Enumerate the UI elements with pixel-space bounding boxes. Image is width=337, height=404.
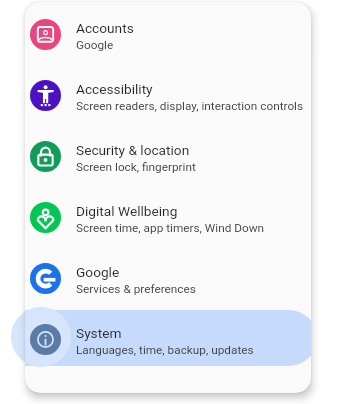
button[interactable]: System	[25, 309, 311, 370]
staticText: Screen lock, fingerprint	[76, 160, 196, 174]
button[interactable]: Google	[25, 248, 311, 309]
button[interactable]: Accounts	[25, 4, 311, 65]
staticText: Digital Wellbeing	[76, 203, 178, 219]
staticText: Languages, time, backup, updates	[76, 343, 254, 357]
staticText: Security & location	[76, 142, 190, 158]
button[interactable]: Security & location	[25, 126, 311, 187]
button[interactable]: Digital Wellbeing	[25, 187, 311, 248]
button[interactable]: Accessibility	[25, 65, 311, 126]
staticText: System	[76, 325, 122, 341]
staticText: Screen readers, display, interaction con…	[76, 99, 304, 113]
staticText: Google	[76, 264, 120, 280]
staticText: Accessibility	[76, 81, 153, 97]
staticText: Services & preferences	[76, 282, 196, 296]
staticText: Accounts	[76, 20, 134, 36]
staticText: Screen time, app timers, Wind Down	[76, 221, 265, 235]
staticText: Google	[76, 38, 114, 52]
